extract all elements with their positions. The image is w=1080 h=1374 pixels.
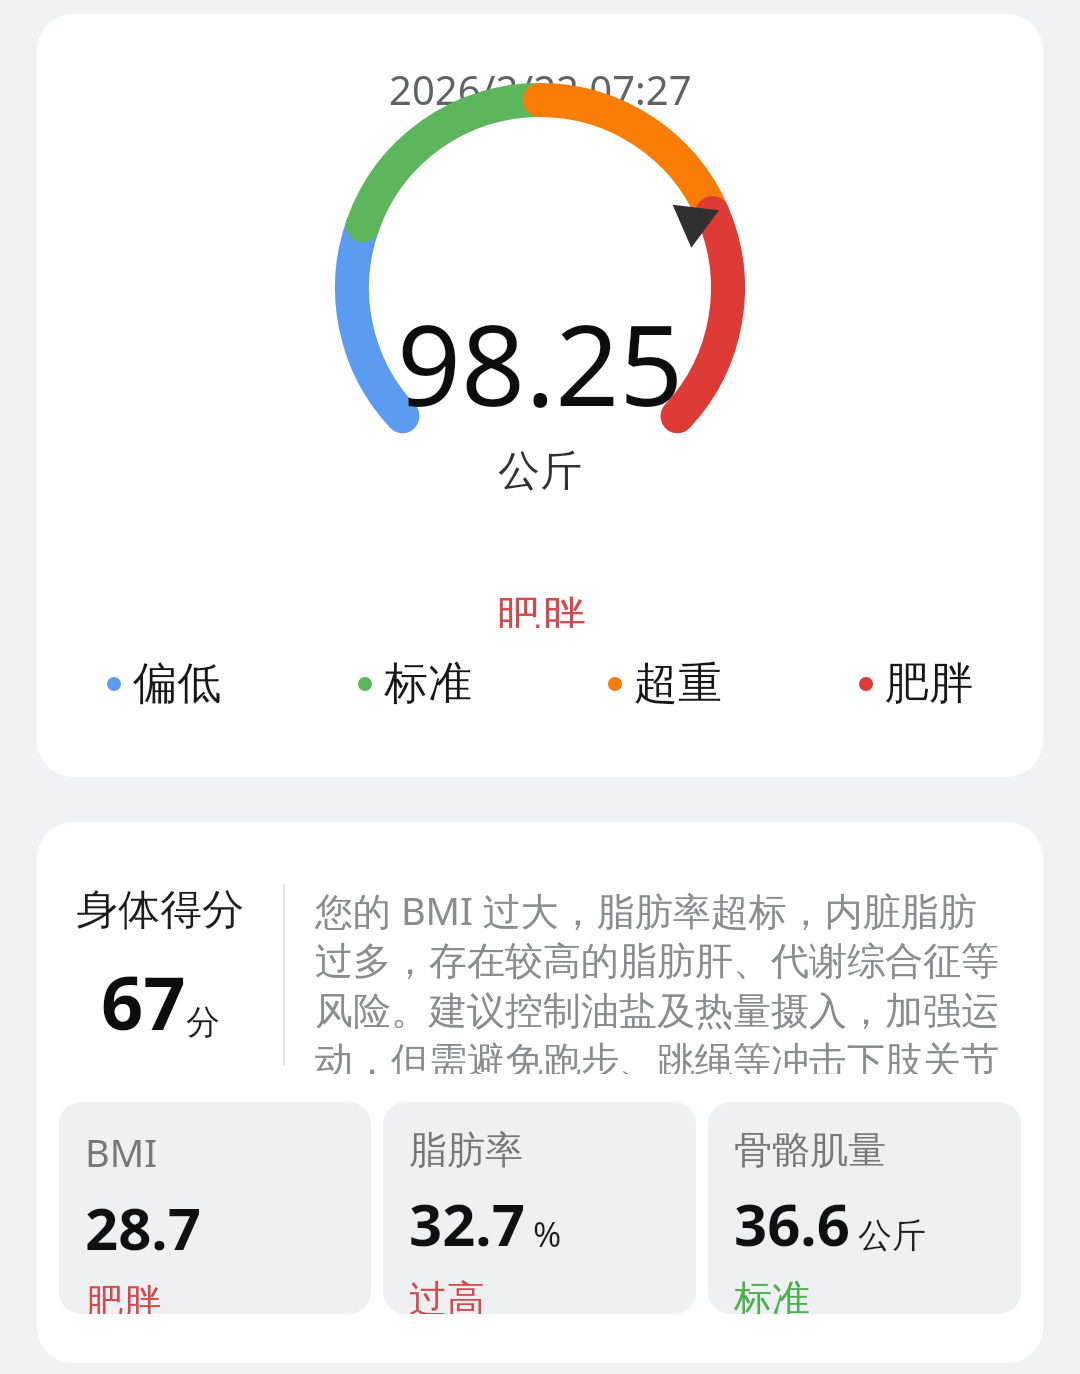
staticText: 身体得分 (76, 884, 244, 937)
staticText: 32.7 (409, 1184, 525, 1263)
staticText: 您的 BMI 过大，脂肪率超标，内脏脂肪过多，存在较高的脂肪肝、代谢综合征等风险… (315, 884, 1013, 1074)
staticText: % (533, 1211, 562, 1257)
staticText: 肥胖 (494, 590, 586, 628)
staticText: 28.7 (85, 1188, 201, 1267)
staticText: 肥胖 (85, 1279, 161, 1314)
button[interactable]: 超重 (608, 656, 722, 711)
button[interactable]: 标准 (358, 656, 472, 711)
button[interactable]: 偏低 (107, 656, 221, 711)
staticText: 98.25 (397, 286, 684, 439)
staticText: 超重 (634, 656, 722, 711)
staticText: 骨骼肌量 (734, 1126, 886, 1174)
staticText: 过高 (409, 1275, 485, 1314)
button[interactable]: 2026/2/22 07:27 (37, 14, 1043, 777)
button[interactable]: BMI (59, 1102, 371, 1314)
staticText: 公斤 (858, 1214, 926, 1257)
button[interactable]: 身体得分 (37, 822, 1043, 1363)
staticText: 肥胖 (885, 656, 973, 711)
staticText: 67 (101, 951, 186, 1052)
button[interactable]: 骨骼肌量 (708, 1102, 1021, 1314)
staticText: 分 (186, 1001, 220, 1044)
button[interactable]: 肥胖 (859, 656, 973, 711)
staticText: 偏低 (133, 656, 221, 711)
staticText: 36.6 (734, 1184, 850, 1263)
staticText: 2026/2/22 07:27 (389, 62, 692, 116)
staticText: 脂肪率 (409, 1126, 523, 1174)
staticText: 标准 (734, 1275, 810, 1314)
button[interactable]: 脂肪率 (383, 1102, 696, 1314)
staticText: 公斤 (498, 445, 582, 498)
staticText: 标准 (384, 656, 472, 711)
staticText: BMI (85, 1126, 158, 1178)
